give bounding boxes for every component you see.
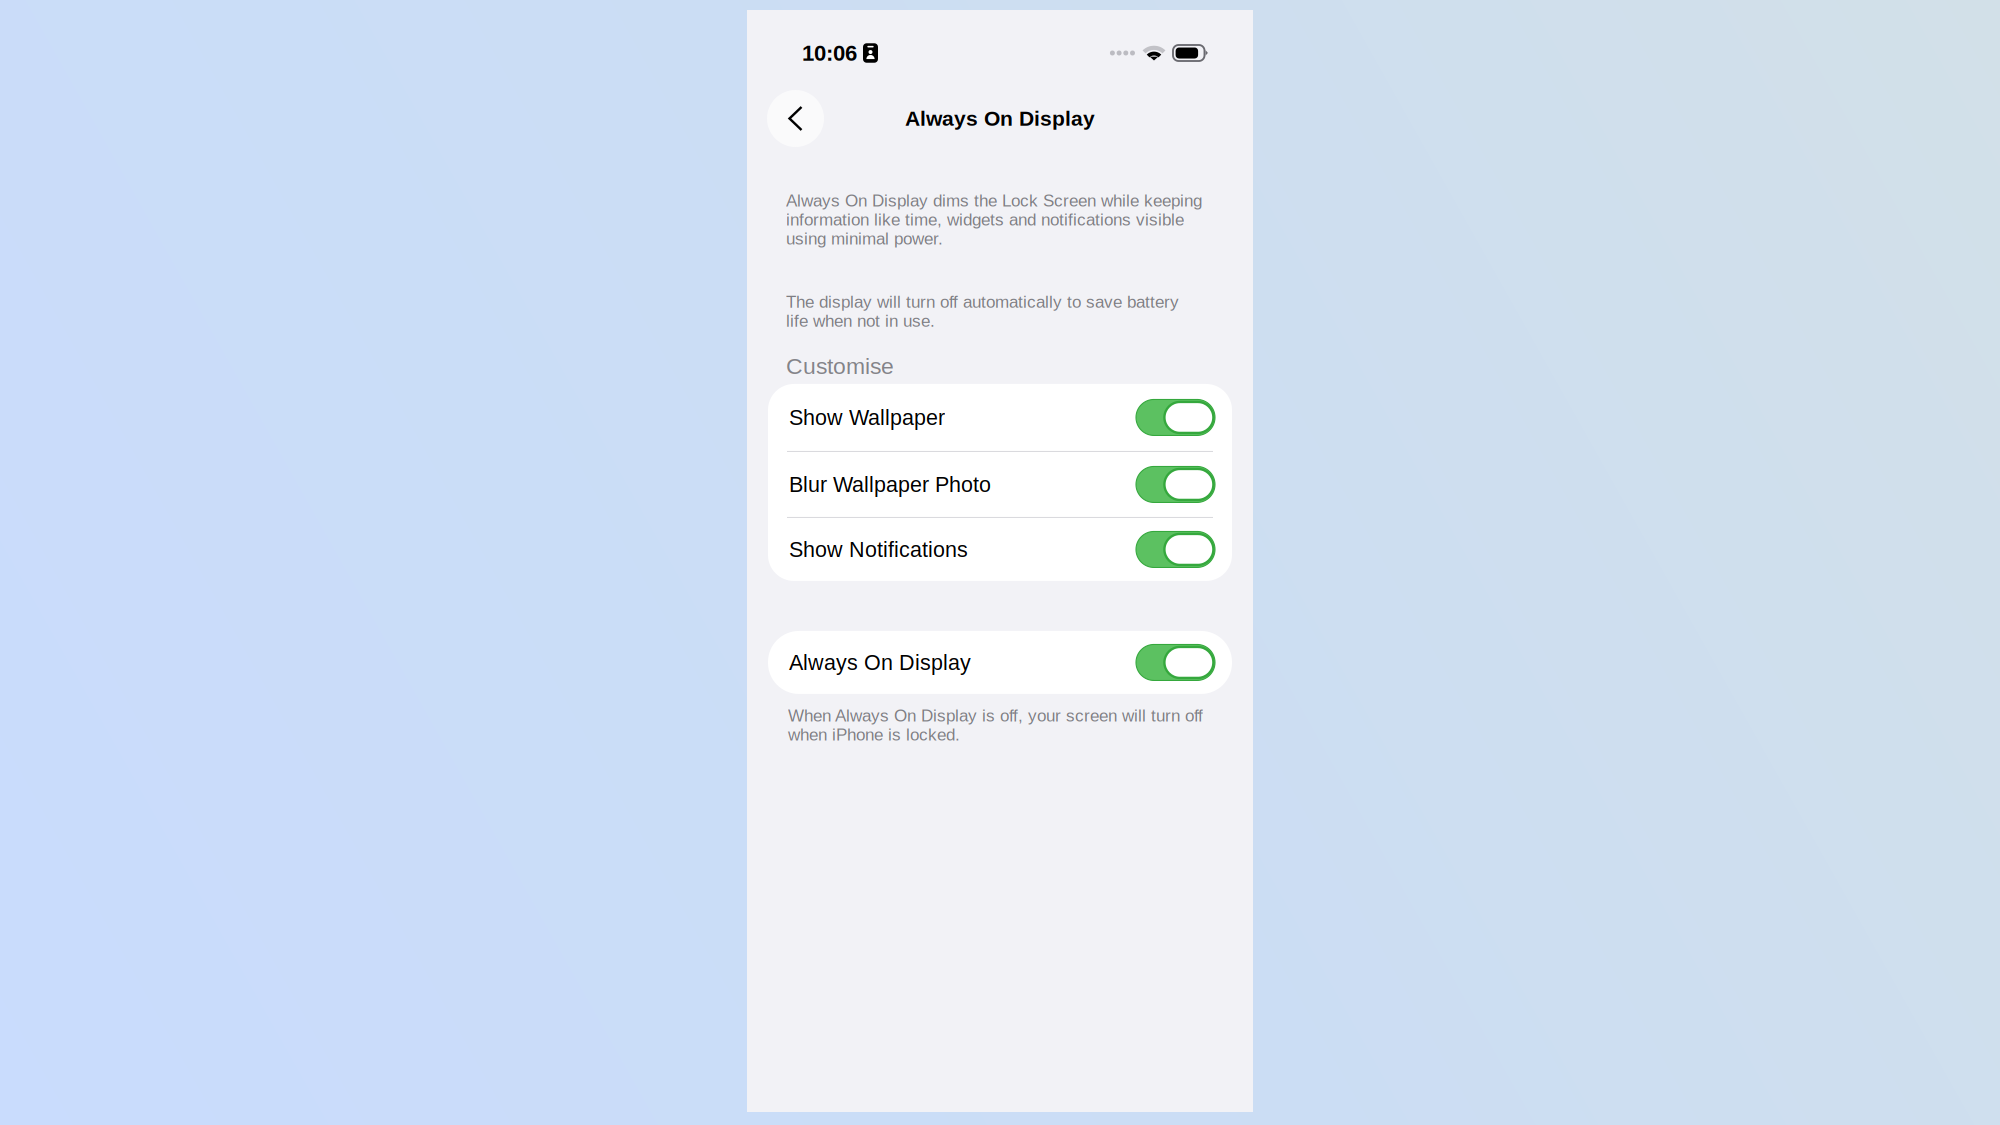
- button[interactable]: Back: [767, 90, 824, 147]
- staticText: When Always On Display is off, your scre…: [788, 706, 1203, 744]
- button[interactable]: Show Notifications: [768, 518, 1232, 581]
- staticText: Customise: [786, 353, 894, 379]
- staticText: Always On Display: [905, 107, 1095, 130]
- staticText: The display will turn off automatically …: [786, 292, 1179, 330]
- staticText: Show Wallpaper: [789, 405, 945, 429]
- button[interactable]: Blur Wallpaper Photo: [768, 452, 1232, 517]
- button[interactable]: Show Wallpaper: [768, 384, 1232, 451]
- staticText: Always On Display dims the Lock Screen w…: [786, 191, 1202, 248]
- staticText: 10:06: [802, 41, 857, 65]
- button[interactable]: Always On Display: [768, 631, 1232, 694]
- staticText: Show Notifications: [789, 537, 968, 561]
- staticText: Always On Display: [789, 650, 971, 674]
- staticText: Blur Wallpaper Photo: [789, 472, 991, 496]
